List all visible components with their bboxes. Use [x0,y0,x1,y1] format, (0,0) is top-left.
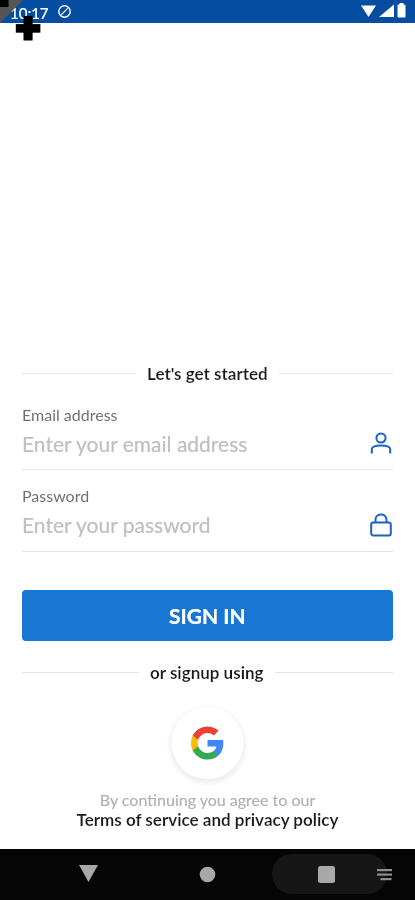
staticText: By continuing you agree to our [0,790,415,809]
button[interactable]: Sign in with Google [159,695,256,792]
button[interactable]: Home [194,861,221,888]
staticText: Enter your email address [22,431,369,456]
staticText: Let's get started [147,363,268,383]
staticText: or signup using [150,662,264,682]
staticText: Email address [22,405,118,424]
staticText: Enter your password [22,512,369,537]
staticText: Password [22,486,90,505]
staticText: 10:17 [10,4,49,22]
button[interactable]: Back [75,861,102,886]
button[interactable]: SIGN IN [22,590,393,641]
staticText: SIGN IN [169,603,246,628]
button[interactable]: Switch keyboard [374,864,396,884]
button[interactable]: Terms of service and privacy policy [0,809,415,829]
staticText: Terms of service and privacy policy [0,809,415,829]
button[interactable]: Recent apps [313,861,340,888]
